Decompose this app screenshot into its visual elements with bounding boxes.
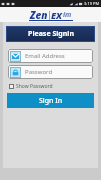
staticText: Sign In xyxy=(39,96,63,106)
button[interactable]: Show Password xyxy=(9,82,53,90)
staticText: Password xyxy=(25,68,53,76)
staticText: Zen xyxy=(30,8,48,22)
staticText: Show Password xyxy=(16,83,53,90)
button[interactable]: Please Signin xyxy=(6,26,95,42)
staticText: im xyxy=(63,10,72,20)
button[interactable]: Password xyxy=(8,65,93,79)
staticText: EX xyxy=(51,9,63,21)
button[interactable]: Sign In xyxy=(7,93,94,108)
staticText: Please Signin xyxy=(28,29,74,39)
staticText: 3:19 PM xyxy=(84,1,100,6)
other: Password xyxy=(10,67,21,78)
other: Email address xyxy=(10,51,21,62)
staticText: Email Address xyxy=(25,52,65,60)
button[interactable]: Email address xyxy=(8,49,93,63)
